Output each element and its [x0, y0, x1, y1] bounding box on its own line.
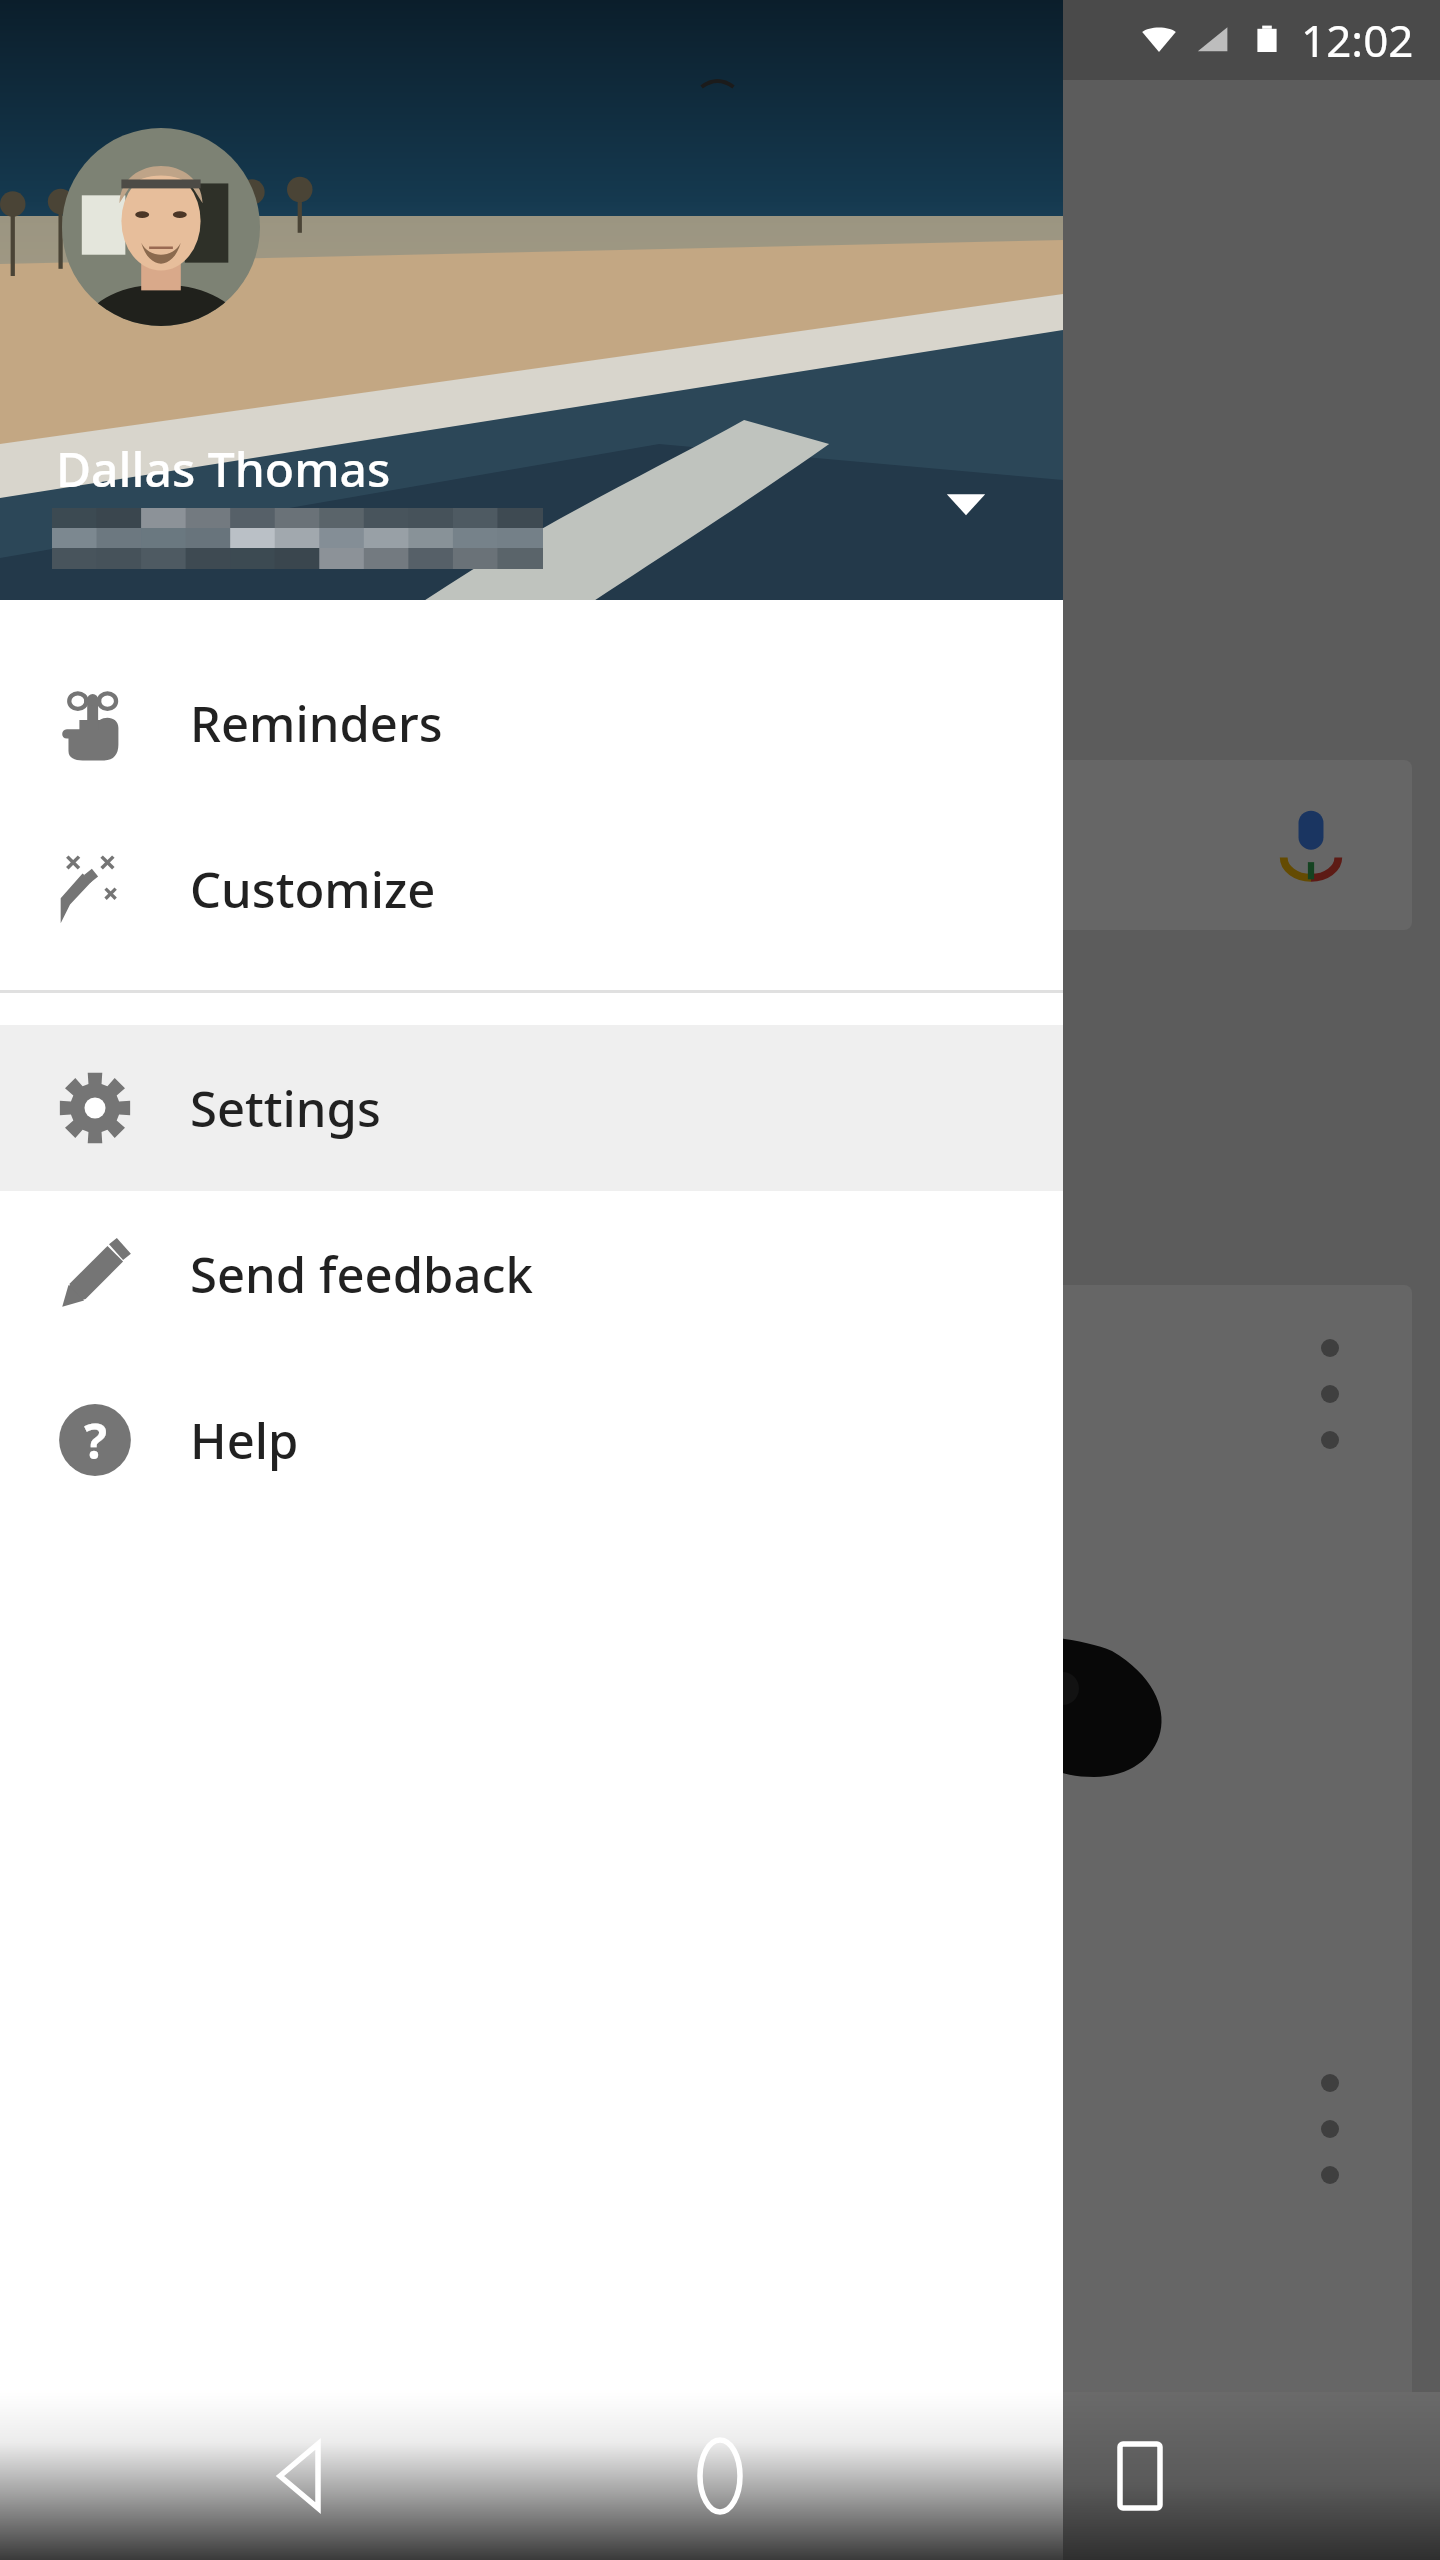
staticText: Send feedback — [190, 1241, 533, 1308]
button[interactable]: Send feedback — [0, 1191, 1063, 1357]
button[interactable]: Settings — [0, 1025, 1063, 1191]
button[interactable]: Reminders — [0, 640, 1063, 806]
staticText: Say "Ok Google" to make a call" — [140, 814, 820, 877]
staticText: Reminders — [190, 690, 443, 757]
button[interactable]: More options — [1300, 2074, 1360, 2184]
button[interactable]: Back — [250, 2426, 350, 2526]
button[interactable]: ? — [0, 1357, 1063, 1523]
staticText: Help — [190, 1407, 299, 1474]
button[interactable]: Profile photo — [62, 128, 260, 326]
button[interactable]: Switch account — [918, 452, 1014, 548]
button[interactable]: More options — [1300, 1339, 1360, 1449]
button[interactable]: Recent apps — [1090, 2426, 1190, 2526]
staticText: Customize — [190, 856, 436, 923]
button[interactable]: More options — [92, 2020, 1412, 2480]
button[interactable]: Customize — [0, 806, 1063, 972]
staticText: Settings — [190, 1075, 381, 1142]
staticText: ? — [84, 1408, 107, 1473]
staticText: 12:02 — [1301, 10, 1414, 70]
button[interactable]: More options — [92, 1285, 1412, 2285]
button[interactable]: Home — [670, 2426, 770, 2526]
button[interactable]: Say "Ok Google" to make a call" — [92, 760, 1412, 930]
staticText: Dallas Thomas — [56, 436, 391, 501]
